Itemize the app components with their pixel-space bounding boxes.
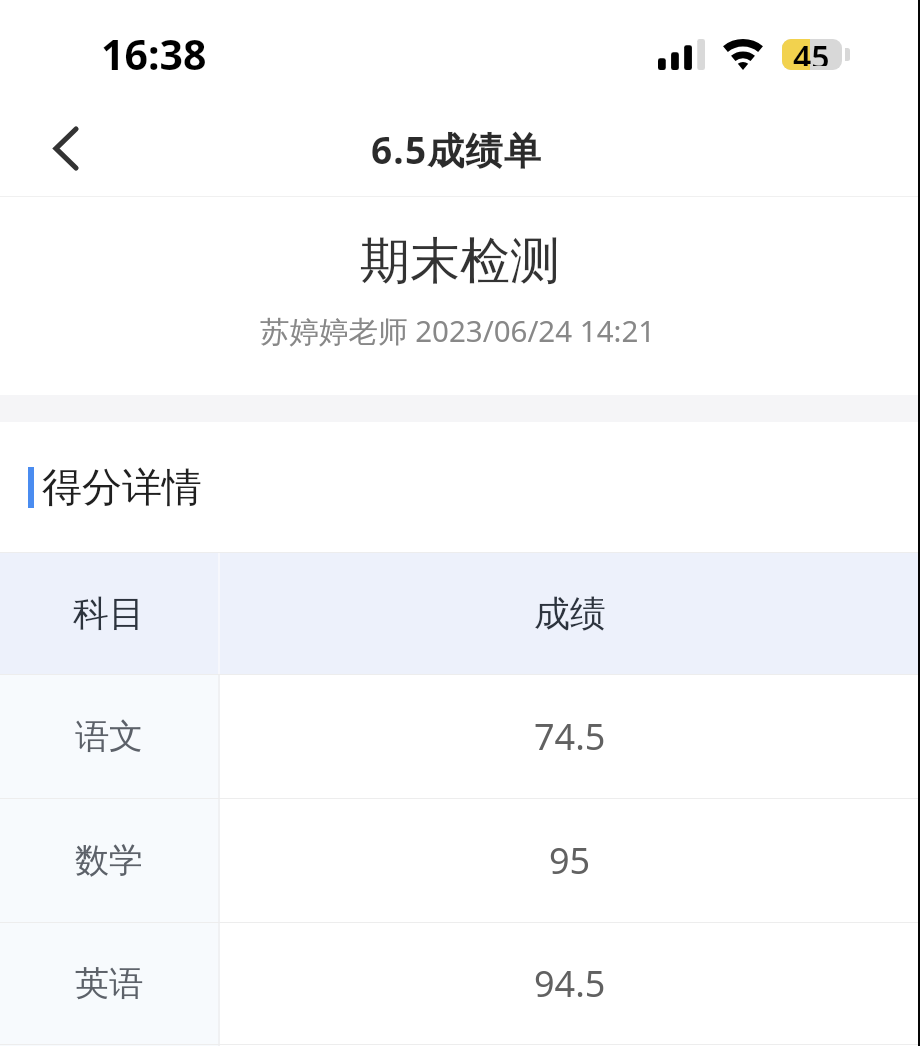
staticText: 语文 (75, 715, 143, 758)
staticText: 英语 (75, 962, 143, 1005)
staticText: 科目 (73, 591, 145, 636)
button[interactable]: 科学 (0, 1045, 920, 1046)
staticText: 6.5成绩单 (371, 124, 542, 175)
staticText: 94.5 (534, 959, 606, 1008)
staticText: 成绩 (534, 591, 606, 636)
staticText: 45 (793, 39, 830, 66)
button[interactable]: Back (22, 102, 110, 190)
button[interactable]: 数学 (0, 799, 920, 922)
staticText: 数学 (75, 839, 143, 882)
button[interactable]: 英语 (0, 923, 920, 1044)
staticText: 95 (549, 836, 591, 885)
button[interactable]: 语文 (0, 675, 920, 798)
staticText: 16:38 (101, 26, 207, 82)
staticText: 得分详情 (42, 462, 202, 512)
staticText: 苏婷婷老师 2023/06/24 14:21 (260, 310, 656, 350)
staticText: 74.5 (534, 712, 606, 761)
staticText: 期末检测 (360, 230, 560, 293)
